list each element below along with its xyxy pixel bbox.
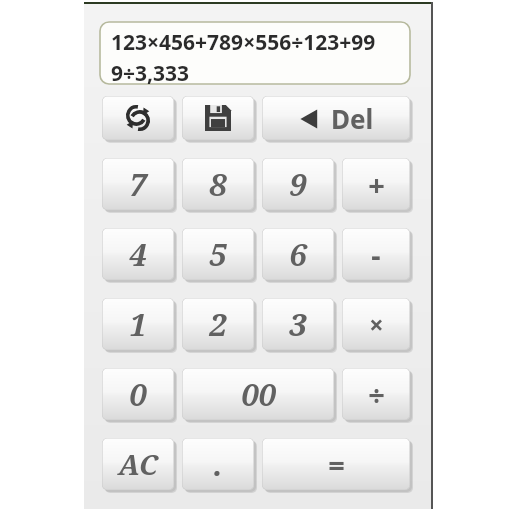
button[interactable]: + [342,158,410,210]
button[interactable]: 4 [102,228,174,280]
button[interactable]: 00 [182,368,334,420]
button[interactable]: Save [182,96,254,140]
staticText: . [213,443,223,485]
button[interactable]: ÷ [342,368,410,420]
staticText: = [328,445,345,484]
button[interactable]: 5 [182,228,254,280]
button[interactable]: 1 [102,298,174,350]
staticText: × [369,307,384,341]
staticText: ÷ [368,375,385,414]
staticText: 9÷3,333 [111,59,190,84]
staticText: 9 [289,163,307,205]
staticText: 7 [129,163,147,205]
staticText: 5 [209,233,227,275]
button[interactable]: 8 [182,158,254,210]
staticText: 123×456+789×556÷123+99 [111,28,376,57]
staticText: 3 [289,303,307,345]
button[interactable]: 3 [262,298,334,350]
button[interactable]: AC [102,438,174,490]
button[interactable]: 9 [262,158,334,210]
button[interactable]: 2 [182,298,254,350]
button[interactable]: - [342,228,410,280]
button[interactable]: Del [262,96,410,140]
staticText: - [371,235,381,274]
staticText: 00 [241,373,276,415]
button[interactable]: × [342,298,410,350]
staticText: 1 [129,303,147,345]
staticText: 8 [209,163,227,205]
staticText: Del [331,101,374,136]
staticText: 4 [129,233,147,275]
button[interactable]: 7 [102,158,174,210]
staticText: AC [118,445,158,483]
button[interactable]: . [182,438,254,490]
button[interactable]: Repeat [102,96,174,140]
staticText: 2 [209,303,227,345]
button[interactable]: = [262,438,410,490]
button[interactable]: 6 [262,228,334,280]
staticText: 0 [129,373,147,415]
staticText: + [368,165,385,204]
button[interactable]: 0 [102,368,174,420]
staticText: 6 [289,233,307,275]
